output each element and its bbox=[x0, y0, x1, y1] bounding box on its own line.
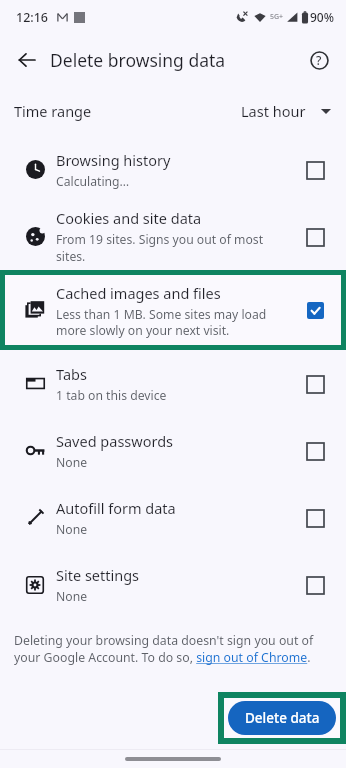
staticText: Cached images and files bbox=[56, 283, 221, 303]
staticText: Deleting your browsing data doesn't sign… bbox=[14, 632, 332, 666]
button[interactable]: Back bbox=[6, 39, 48, 81]
button[interactable]: Browsing history bbox=[0, 136, 346, 203]
staticText: Time range bbox=[14, 101, 92, 121]
button[interactable]: Cookies and site data bbox=[0, 203, 346, 270]
staticText: Delete data bbox=[245, 709, 320, 727]
staticText: Calculating… bbox=[56, 173, 130, 190]
staticText: ? bbox=[316, 52, 322, 68]
button[interactable]: Autofill form data bbox=[0, 484, 346, 551]
button[interactable]: Saved passwords bbox=[0, 417, 346, 484]
staticText: None bbox=[56, 588, 88, 605]
staticText: 5G+ bbox=[270, 12, 284, 22]
staticText: Delete browsing data bbox=[50, 48, 226, 72]
button[interactable]: Cached images and files bbox=[5, 275, 341, 345]
staticText: Saved passwords bbox=[56, 431, 173, 451]
staticText: Autofill form data bbox=[56, 498, 176, 518]
button[interactable]: Toggle bbox=[298, 367, 332, 401]
button[interactable]: Site settings bbox=[0, 551, 346, 618]
staticText: None bbox=[56, 454, 88, 471]
button[interactable]: Toggle bbox=[298, 293, 332, 327]
button[interactable]: Help bbox=[299, 40, 339, 80]
button[interactable]: Toggle bbox=[298, 501, 332, 535]
staticText: 90% bbox=[310, 9, 334, 25]
staticText: Browsing history bbox=[56, 150, 171, 170]
button[interactable]: Toggle bbox=[298, 568, 332, 602]
button[interactable]: Toggle bbox=[298, 153, 332, 187]
button[interactable]: Toggle bbox=[298, 434, 332, 468]
staticText: 1 tab on this device bbox=[56, 387, 167, 404]
staticText: Cookies and site data bbox=[56, 208, 202, 228]
staticText: From 19 sites. Signs you out of most sit… bbox=[56, 231, 290, 265]
staticText: Tabs bbox=[56, 364, 87, 384]
button[interactable]: Tabs bbox=[0, 350, 346, 417]
button[interactable]: Delete data bbox=[228, 701, 336, 735]
button[interactable]: Time range bbox=[0, 86, 346, 136]
staticText: Less than 1 MB. Some sites may load more… bbox=[56, 306, 292, 338]
staticText: Last hour bbox=[241, 101, 306, 121]
staticText: Site settings bbox=[56, 565, 140, 585]
staticText: None bbox=[56, 521, 88, 538]
staticText: 12:16 bbox=[16, 9, 49, 26]
button[interactable]: Toggle bbox=[298, 220, 332, 254]
